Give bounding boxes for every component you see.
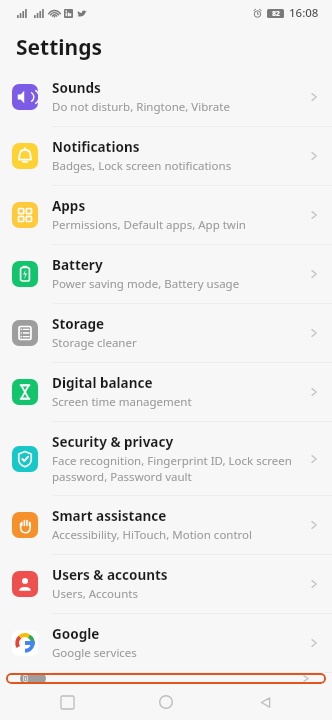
staticText: Power saving mode, Battery usage — [52, 276, 240, 292]
button[interactable]: System — [6, 673, 326, 684]
staticText: Sounds — [52, 79, 101, 97]
staticText: Do not disturb, Ringtone, Vibrate — [52, 99, 230, 115]
staticText: Security & privacy — [52, 433, 174, 451]
button[interactable]: Apps — [0, 186, 332, 245]
staticText: Storage cleaner — [52, 335, 137, 351]
staticText: Storage — [52, 315, 105, 333]
staticText: Screen time management — [52, 394, 192, 410]
staticText: Google — [52, 625, 100, 643]
staticText: Smart assistance — [52, 507, 167, 525]
staticText: Permissions, Default apps, App twin — [52, 217, 246, 233]
staticText: Accessibility, HiTouch, Motion control — [52, 527, 253, 543]
button[interactable]: Recent apps — [35, 686, 99, 718]
staticText: Google services — [52, 645, 137, 661]
button[interactable]: Home — [134, 686, 198, 718]
staticText: Settings — [16, 33, 103, 62]
button[interactable]: Notifications — [0, 127, 332, 186]
button[interactable]: Users & accounts — [0, 555, 332, 614]
staticText: Digital balance — [52, 374, 153, 392]
staticText: Users & accounts — [52, 566, 168, 584]
staticText: Notifications — [52, 138, 140, 156]
button[interactable]: Sounds — [0, 68, 332, 127]
button[interactable]: Battery — [0, 245, 332, 304]
button[interactable]: Smart assistance — [0, 496, 332, 555]
button[interactable]: Storage — [0, 304, 332, 363]
button[interactable]: Back — [233, 686, 297, 718]
button[interactable]: Security & privacy — [0, 422, 332, 496]
staticText: Face recognition, Fingerprint ID, Lock s… — [52, 453, 301, 484]
staticText: Apps — [52, 197, 86, 215]
button[interactable]: Google — [0, 614, 332, 673]
staticText: Battery — [52, 256, 103, 274]
staticText: Badges, Lock screen notifications — [52, 158, 232, 174]
button[interactable]: Digital balance — [0, 363, 332, 422]
staticText: 16:08 — [289, 5, 319, 21]
staticText: Users, Accounts — [52, 586, 138, 602]
staticText: 82 — [272, 9, 280, 18]
